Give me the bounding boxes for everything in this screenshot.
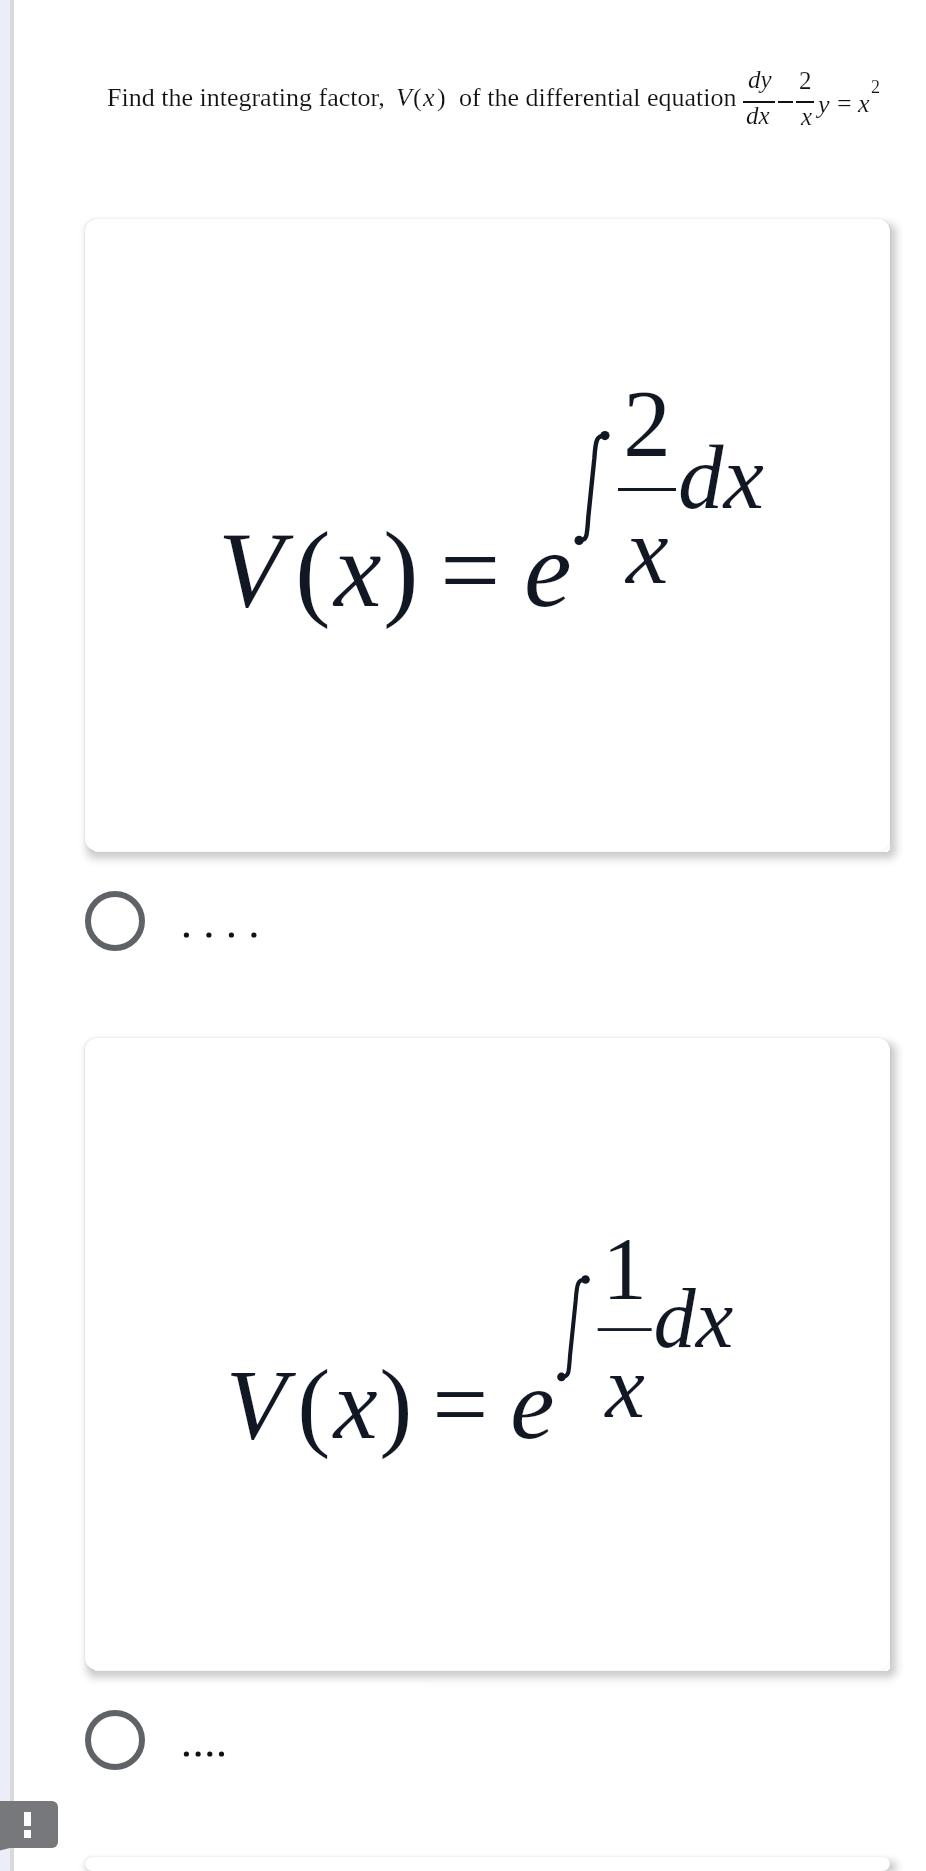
staticText: 2 [871,77,880,97]
staticText: e [524,511,572,629]
staticText: V [218,511,284,629]
staticText: x [801,103,813,131]
staticText: ( [295,511,331,629]
staticText: V [396,83,412,112]
staticText: x [334,511,382,629]
button[interactable]: Select this answer [0,851,926,989]
staticText: ) [437,83,446,112]
staticText: x [626,497,669,603]
staticText: dx [678,427,764,528]
staticText: = [440,511,501,629]
staticText: dx [653,1271,733,1365]
staticText: x [423,83,435,112]
staticText: ( [297,1350,331,1459]
staticText: ( [413,83,422,112]
button[interactable]: V [85,1038,890,1670]
staticText: e [510,1350,555,1459]
staticText: ) [383,511,419,629]
staticText: y [818,90,830,119]
staticText: = [432,1350,489,1459]
button[interactable]: Report a problem [0,1801,58,1859]
staticText: 1 [602,1218,647,1317]
staticText: ) [379,1350,413,1459]
staticText: of the differential equation [459,83,737,112]
staticText: Find the integrating factor, [107,83,385,112]
staticText: x [334,1350,378,1459]
button[interactable]: V [85,219,890,851]
staticText: x [605,1336,645,1435]
button[interactable]: Select this answer [0,1670,926,1808]
staticText: = [837,89,852,118]
staticText: 2 [799,67,812,95]
staticText: V [226,1350,287,1459]
staticText: x [858,89,870,118]
staticText: dy [748,66,772,94]
staticText: dx [746,102,770,130]
staticText: 2 [623,370,671,476]
